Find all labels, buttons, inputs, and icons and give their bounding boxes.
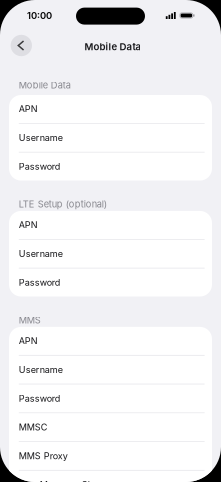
button[interactable]: Username bbox=[9, 356, 212, 384]
staticText: APN bbox=[19, 219, 38, 230]
staticText: Mobile Data bbox=[19, 80, 71, 91]
staticText: Password bbox=[19, 277, 61, 288]
staticText: MMSC bbox=[19, 422, 48, 433]
staticText: Mobile Data bbox=[84, 41, 141, 52]
staticText: Max Message Size bbox=[19, 479, 100, 482]
button[interactable]: Password bbox=[9, 152, 212, 181]
button[interactable]: Back bbox=[11, 35, 32, 56]
button[interactable]: Username bbox=[9, 124, 212, 152]
button[interactable]: MMS Proxy bbox=[9, 442, 212, 470]
button[interactable]: Max Message Size bbox=[9, 471, 212, 482]
staticText: LTE Setup (optional) bbox=[19, 199, 107, 210]
staticText: Password bbox=[19, 161, 61, 172]
button[interactable]: Username bbox=[9, 240, 212, 268]
button[interactable]: MMSC bbox=[9, 413, 212, 441]
staticText: APN bbox=[19, 335, 38, 346]
button[interactable]: APN bbox=[9, 327, 212, 355]
staticText: APN bbox=[19, 103, 38, 114]
button[interactable]: APN bbox=[9, 211, 212, 239]
button[interactable]: Password bbox=[9, 384, 212, 412]
staticText: MMS bbox=[19, 315, 41, 326]
staticText: MMS Proxy bbox=[19, 450, 68, 461]
button[interactable]: Password bbox=[9, 268, 212, 297]
staticText: Password bbox=[19, 393, 61, 404]
staticText: Username bbox=[19, 132, 63, 143]
staticText: Username bbox=[19, 364, 63, 375]
staticText: 10:00 bbox=[27, 10, 52, 21]
staticText: Username bbox=[19, 248, 63, 259]
button[interactable]: APN bbox=[9, 95, 212, 123]
